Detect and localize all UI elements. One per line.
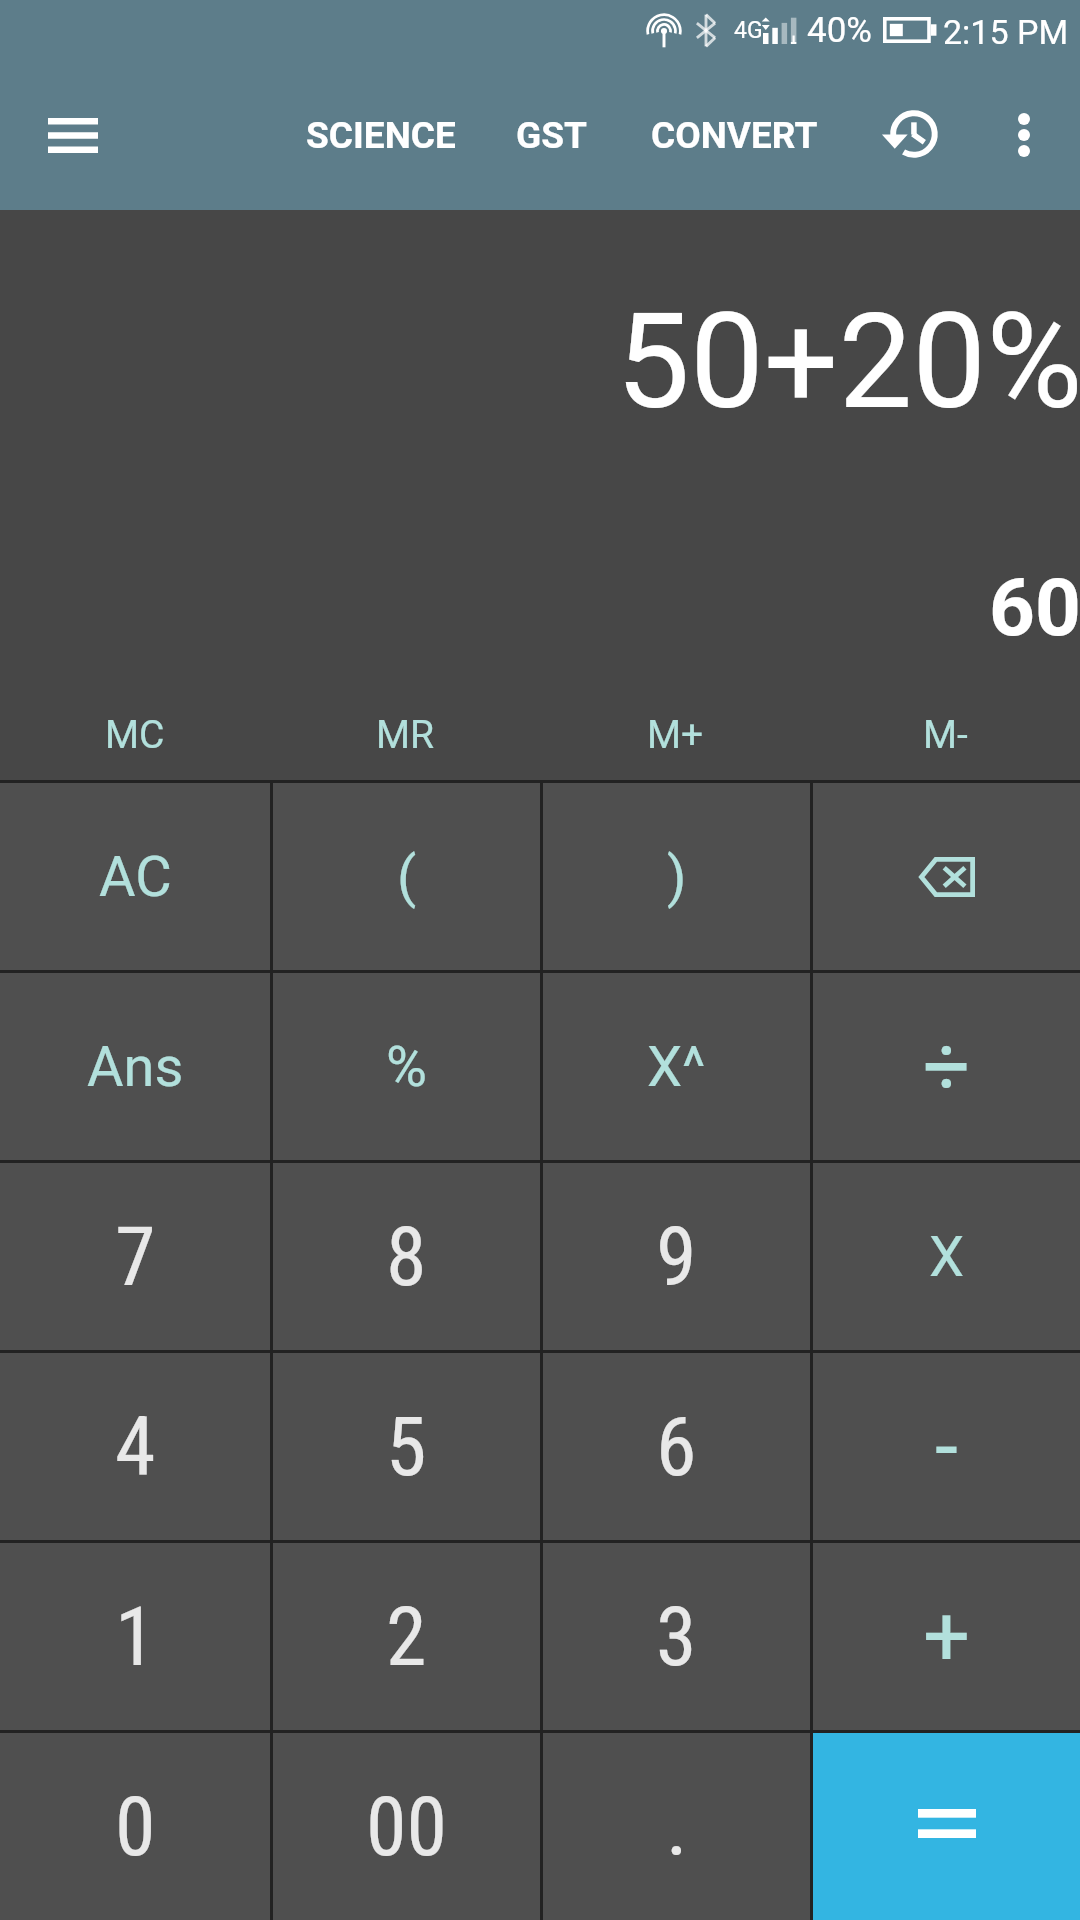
staticText: CONVERT (651, 114, 818, 157)
staticText: ÷ (923, 1018, 971, 1115)
staticText: SCIENCE (306, 114, 456, 157)
staticText: 2:15 PM (943, 12, 1069, 52)
button[interactable]: X^ (543, 973, 810, 1160)
staticText: X (929, 1224, 965, 1290)
button[interactable]: MR (270, 690, 540, 780)
staticText: 4G (734, 17, 763, 44)
staticText: 7 (115, 1209, 156, 1305)
staticText: 1 (115, 1589, 156, 1685)
staticText: ( (397, 844, 417, 910)
button[interactable]: Equals (813, 1733, 1080, 1920)
staticText: X^ (647, 1034, 706, 1100)
staticText: MC (105, 712, 165, 758)
staticText: 6 (656, 1399, 697, 1495)
staticText: ) (667, 844, 687, 910)
button[interactable]: 9 (543, 1163, 810, 1350)
button[interactable]: ( (273, 783, 540, 970)
staticText: AC (99, 844, 172, 910)
staticText: % (386, 1034, 428, 1100)
button[interactable]: More options (968, 80, 1080, 190)
button[interactable]: ÷ (813, 973, 1080, 1160)
button[interactable]: 5 (273, 1353, 540, 1540)
button[interactable]: 3 (543, 1543, 810, 1730)
button[interactable]: GST (486, 60, 617, 210)
staticText: GST (516, 114, 587, 157)
button[interactable]: CONVERT (621, 60, 848, 210)
staticText: 3 (656, 1589, 697, 1685)
button[interactable]: ) (543, 783, 810, 970)
button[interactable]: 7 (0, 1163, 270, 1350)
button[interactable]: % (273, 973, 540, 1160)
staticText: 00 (366, 1779, 447, 1875)
button[interactable]: 4 (0, 1353, 270, 1540)
button[interactable]: 0 (0, 1733, 270, 1920)
button[interactable]: . (543, 1733, 810, 1920)
staticText: 8 (386, 1209, 427, 1305)
staticText: 0 (115, 1779, 156, 1875)
button[interactable]: 6 (543, 1353, 810, 1540)
staticText: MR (376, 712, 435, 758)
button[interactable]: Ans (0, 973, 270, 1160)
button[interactable]: Backspace (813, 783, 1080, 970)
staticText: 60 (989, 561, 1080, 655)
staticText: Ans (87, 1034, 184, 1100)
button[interactable]: X (813, 1163, 1080, 1350)
staticText: 9 (656, 1209, 697, 1305)
staticText: + (923, 1588, 971, 1685)
staticText: M- (923, 712, 968, 758)
staticText: - (935, 1398, 958, 1495)
staticText: 50+20% (616, 285, 1080, 439)
button[interactable]: Menu (28, 90, 118, 180)
button[interactable]: M+ (540, 690, 810, 780)
button[interactable]: - (813, 1353, 1080, 1540)
button[interactable]: MC (0, 690, 270, 780)
button[interactable]: 00 (273, 1733, 540, 1920)
button[interactable]: History (858, 80, 968, 190)
button[interactable]: 2 (273, 1543, 540, 1730)
staticText: 40% (807, 10, 872, 51)
button[interactable]: SCIENCE (276, 60, 486, 210)
button[interactable]: 8 (273, 1163, 540, 1350)
staticText: . (666, 1779, 688, 1875)
button[interactable]: M- (810, 690, 1080, 780)
button[interactable]: + (813, 1543, 1080, 1730)
staticText: 5 (386, 1399, 427, 1495)
button[interactable]: 1 (0, 1543, 270, 1730)
staticText: 2 (386, 1589, 427, 1685)
staticText: M+ (647, 712, 704, 758)
staticText: 4 (115, 1399, 156, 1495)
button[interactable]: AC (0, 783, 270, 970)
